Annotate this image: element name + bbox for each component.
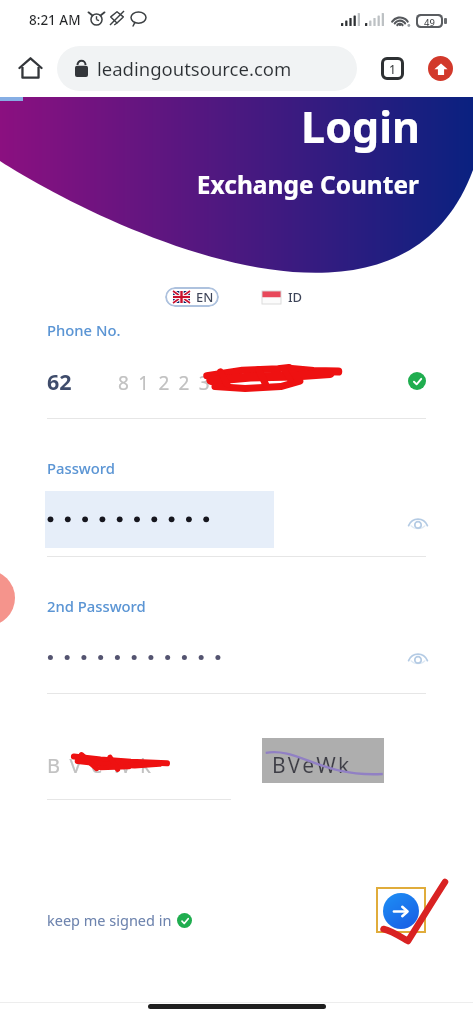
staticText: 1	[389, 61, 396, 77]
button[interactable]: Show password	[406, 646, 430, 670]
staticText: Exchange Counter	[0, 168, 419, 201]
staticText: BVeWk	[272, 751, 352, 780]
staticText: ID	[288, 288, 303, 306]
staticText: 62	[47, 367, 72, 396]
button[interactable]: Home	[13, 51, 47, 85]
button[interactable]: Upload	[428, 56, 453, 81]
staticText: 2nd Password	[47, 596, 146, 616]
button[interactable]: Tabs	[381, 57, 404, 80]
staticText: 49	[424, 16, 435, 26]
staticText: EN	[196, 288, 214, 306]
staticText: keep me signed in	[47, 910, 172, 930]
button[interactable]: leadingoutsource.com	[57, 46, 357, 91]
staticText: 8:21 AM	[29, 11, 81, 29]
button[interactable]: keep me signed in	[47, 910, 192, 930]
button[interactable]: ID	[262, 287, 303, 307]
button[interactable]: Submit	[383, 893, 419, 929]
staticText: Password	[47, 458, 115, 478]
button[interactable]: EN	[165, 287, 219, 307]
staticText: 8 1 2 2 3	[118, 370, 212, 396]
button[interactable]: Show password	[406, 511, 430, 535]
button[interactable]: Captcha image	[262, 738, 384, 783]
staticText: B V e W k	[47, 752, 154, 779]
staticText: leadingoutsource.com	[97, 56, 292, 81]
staticText: Login	[0, 97, 420, 156]
staticText: Phone No.	[47, 320, 121, 340]
